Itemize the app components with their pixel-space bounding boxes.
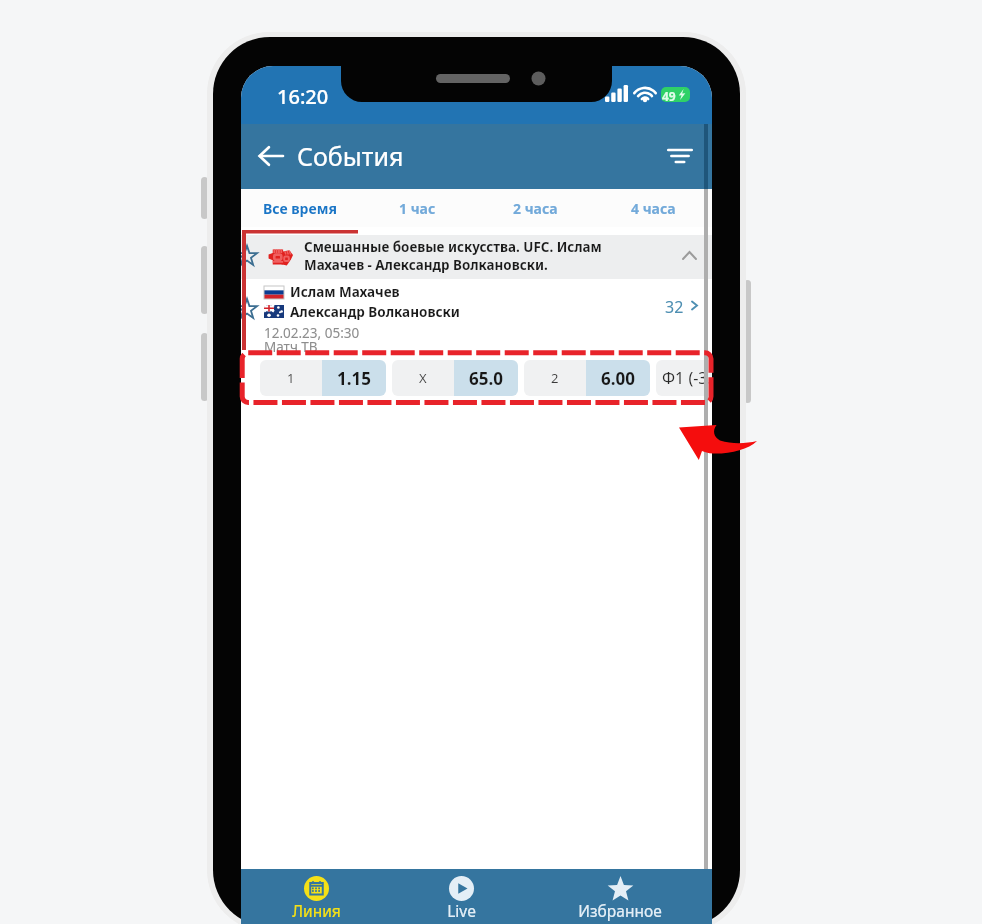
button[interactable]: Линия bbox=[266, 869, 366, 924]
staticText: Линия bbox=[292, 900, 341, 921]
staticText: Все время bbox=[263, 199, 337, 218]
staticText: 1.15 bbox=[337, 367, 371, 390]
staticText: Смешанные боевые искусства. UFC. Ислам М… bbox=[304, 238, 634, 274]
button[interactable]: 2 bbox=[524, 360, 650, 396]
button[interactable]: Ф1 (-3.5) bbox=[656, 360, 712, 396]
staticText: X bbox=[419, 369, 427, 387]
button[interactable]: Back bbox=[249, 134, 293, 178]
button[interactable]: Все время bbox=[241, 189, 358, 227]
button[interactable]: Избранное bbox=[570, 869, 670, 924]
staticText: 49 bbox=[662, 88, 676, 104]
staticText: 2 часа bbox=[513, 199, 558, 218]
staticText: Ф1 (-3.5) bbox=[662, 367, 712, 389]
staticText: 12.02.23, 05:30 bbox=[264, 324, 360, 342]
button[interactable]: 1 bbox=[260, 360, 386, 396]
staticText: 6.00 bbox=[601, 367, 635, 390]
staticText: Матч ТВ bbox=[264, 338, 318, 356]
staticText: 16:20 bbox=[277, 83, 329, 110]
staticText: Избранное bbox=[578, 900, 662, 921]
button[interactable]: 1 час bbox=[358, 189, 476, 227]
staticText: 65.0 bbox=[469, 367, 503, 390]
button[interactable]: Filter bbox=[660, 136, 700, 176]
staticText: События bbox=[297, 139, 404, 173]
staticText: 1 час bbox=[399, 199, 436, 218]
staticText: Ислам Махачев bbox=[290, 283, 400, 301]
staticText: 4 часа bbox=[631, 199, 676, 218]
staticText: 32 bbox=[665, 296, 684, 318]
staticText: Live bbox=[447, 900, 476, 921]
staticText: 1 bbox=[287, 369, 295, 387]
button[interactable]: Ислам Махачев bbox=[241, 279, 712, 352]
button[interactable]: Смешанные боевые искусства. UFC. Ислам М… bbox=[241, 235, 712, 279]
staticText: Александр Волкановски bbox=[290, 303, 460, 321]
staticText: 2 bbox=[551, 369, 559, 387]
button[interactable]: 4 часа bbox=[594, 189, 712, 227]
button[interactable]: Live bbox=[411, 869, 511, 924]
button[interactable]: X bbox=[392, 360, 518, 396]
button[interactable]: 2 часа bbox=[476, 189, 594, 227]
